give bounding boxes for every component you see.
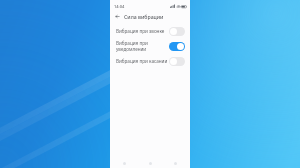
staticText: 14:04 [114,4,125,9]
button[interactable]: Вибрация при звонке [110,25,190,37]
button[interactable]: Home [146,159,155,168]
button[interactable]: Toggle off [169,57,185,66]
button[interactable]: Toggle off [169,27,185,36]
button[interactable]: Recent apps [171,159,180,168]
button[interactable]: Back [120,159,129,168]
staticText: Вибрация при уведомлении [116,40,169,52]
button[interactable]: Вибрация при касании [110,55,190,67]
staticText: Сила вибрации [124,13,164,20]
button[interactable]: Toggle on [169,42,185,51]
staticText: Вибрация при касании [116,58,169,64]
button[interactable]: Вибрация при уведомлении [110,40,190,52]
button[interactable]: Back [114,13,121,20]
staticText: Вибрация при звонке [116,28,169,34]
